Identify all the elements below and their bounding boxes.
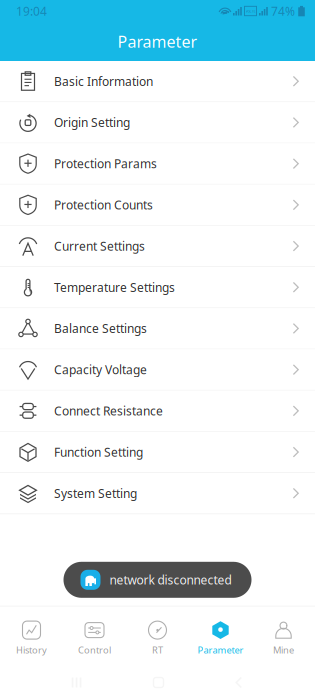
button[interactable]: Capacity Voltage [0,349,315,391]
button[interactable]: Control [63,607,126,665]
staticText: Temperature Settings [54,279,175,295]
button[interactable]: Current Settings [0,226,315,267]
staticText: History [16,644,47,656]
button[interactable]: Parameter [189,607,252,665]
staticText: VoLTE [245,8,255,14]
staticText: Connect Resistance [54,403,163,419]
button[interactable]: Function Setting [0,432,315,473]
staticText: Origin Setting [54,114,130,130]
staticText: Current Settings [54,238,145,254]
staticText: network disconnected [109,572,231,588]
button[interactable]: Temperature Settings [0,267,315,308]
button[interactable]: Connect Resistance [0,391,315,432]
staticText: RT [152,644,163,656]
button[interactable]: RT [126,607,189,665]
staticText: 74% [271,3,295,19]
staticText: Parameter [197,644,243,656]
staticText: Parameter [117,31,197,52]
staticText: Capacity Voltage [54,362,147,378]
staticText: Function Setting [54,444,143,460]
staticText: Protection Params [54,156,157,172]
button[interactable]: Mine [252,607,315,665]
button[interactable]: History [0,607,63,665]
button[interactable]: Protection Counts [0,185,315,226]
staticText: Protection Counts [54,197,153,213]
staticText: Basic Information [54,73,153,89]
button[interactable]: System Setting [0,473,315,514]
staticText: 19:04 [16,3,47,19]
button[interactable]: Balance Settings [0,308,315,349]
staticText: Balance Settings [54,320,147,336]
staticText: Mine [273,644,294,656]
button[interactable]: Protection Params [0,143,315,185]
staticText: System Setting [54,485,137,501]
button[interactable]: Origin Setting [0,102,315,143]
button[interactable]: Basic Information [0,61,315,102]
staticText: Control [78,644,111,656]
